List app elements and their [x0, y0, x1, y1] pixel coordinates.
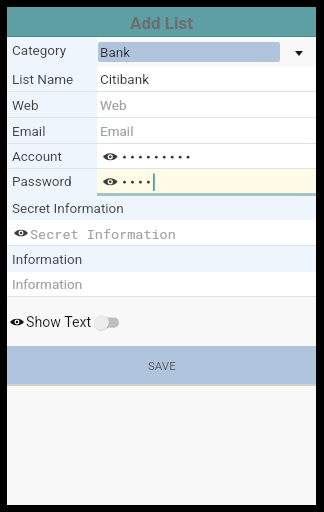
staticText: Email	[12, 123, 46, 139]
staticText: List Name	[12, 71, 74, 87]
staticText: Web	[12, 97, 39, 113]
button[interactable]: Secret Information	[7, 220, 316, 245]
staticText: Information	[12, 251, 83, 267]
button[interactable]: SAVE	[7, 346, 316, 384]
button[interactable]: Open category dropdown	[280, 37, 316, 67]
button[interactable]: List Name	[7, 67, 316, 91]
staticText: Secret Information	[30, 225, 176, 243]
staticText: Information	[12, 276, 83, 292]
staticText: Citibank	[100, 71, 149, 87]
staticText: Email	[100, 123, 134, 139]
staticText: Show Text	[26, 314, 92, 331]
staticText: Web	[100, 97, 127, 113]
staticText: Secret Information	[12, 200, 124, 216]
button[interactable]: Information	[7, 272, 316, 296]
staticText: Category	[12, 42, 67, 58]
staticText: Account	[12, 148, 62, 164]
staticText: Bank	[100, 44, 131, 60]
button[interactable]: Web	[7, 92, 316, 117]
staticText: Add List	[130, 13, 193, 33]
staticText: SAVE	[148, 359, 176, 372]
button[interactable]: Show Text toggle	[94, 312, 120, 332]
button[interactable]: Bank	[98, 42, 280, 62]
button[interactable]: Show Text	[7, 312, 120, 332]
button[interactable]: Email	[7, 118, 316, 143]
button[interactable]: Password	[7, 169, 316, 193]
button[interactable]: Account	[7, 144, 316, 168]
staticText: Password	[12, 173, 72, 189]
